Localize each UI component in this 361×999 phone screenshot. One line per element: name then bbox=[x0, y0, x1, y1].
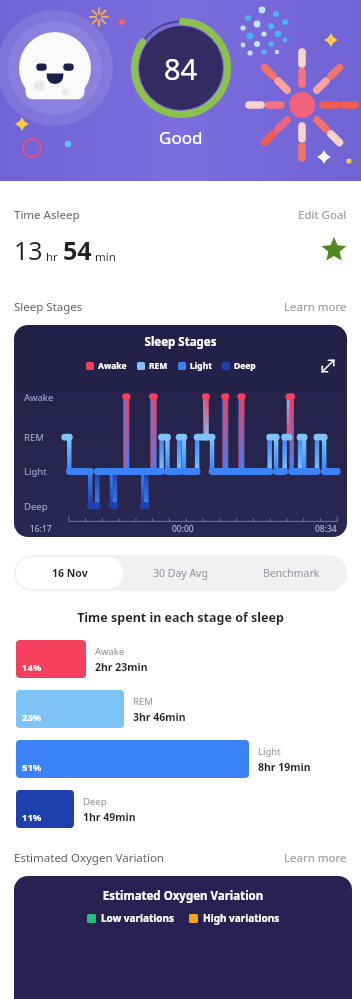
staticText: Benchmark bbox=[263, 566, 320, 580]
button[interactable]: Sleep Stages bbox=[14, 325, 347, 537]
staticText: REM bbox=[24, 431, 44, 444]
staticText: 13 bbox=[14, 233, 43, 267]
staticText: Edit Goal bbox=[298, 207, 347, 223]
button[interactable]: 14% bbox=[16, 640, 349, 678]
button[interactable]: Benchmark bbox=[236, 555, 347, 591]
staticText: Light bbox=[24, 465, 47, 478]
staticText: Awake bbox=[95, 645, 125, 658]
staticText: Time Asleep bbox=[14, 207, 80, 223]
staticText: 84 bbox=[164, 49, 198, 88]
staticText: 54 bbox=[63, 233, 92, 267]
staticText: 1hr 49min bbox=[83, 810, 136, 824]
staticText: Learn more bbox=[284, 850, 347, 866]
staticText: min bbox=[95, 249, 116, 265]
staticText: 11% bbox=[22, 811, 42, 824]
staticText: Deep bbox=[83, 795, 107, 808]
button[interactable]: 23% bbox=[16, 690, 349, 728]
staticText: Low variations bbox=[101, 911, 175, 925]
button[interactable]: Expand chart bbox=[319, 357, 337, 375]
staticText: Awake bbox=[24, 391, 54, 404]
staticText: Learn more bbox=[284, 299, 347, 315]
staticText: Estimated Oxygen Variation bbox=[14, 888, 352, 904]
staticText: 00:00 bbox=[172, 523, 194, 535]
staticText: 3hr 46min bbox=[133, 710, 186, 724]
staticText: 16:17 bbox=[30, 523, 52, 535]
staticText: REM bbox=[149, 360, 168, 372]
staticText: Deep bbox=[24, 500, 48, 513]
button[interactable]: 16 Nov bbox=[16, 557, 123, 589]
staticText: 14% bbox=[22, 661, 42, 674]
staticText: Deep bbox=[234, 360, 256, 372]
staticText: Sleep Stages bbox=[14, 299, 83, 315]
staticText: High variations bbox=[203, 911, 280, 925]
staticText: 30 Day Avg bbox=[153, 566, 208, 580]
staticText: Awake bbox=[98, 360, 127, 372]
staticText: 08:34 bbox=[315, 523, 337, 535]
staticText: 2hr 23min bbox=[95, 660, 148, 674]
staticText: Light bbox=[258, 745, 281, 758]
staticText: REM bbox=[133, 695, 153, 708]
button[interactable]: 51% bbox=[16, 740, 349, 778]
staticText: 23% bbox=[22, 711, 42, 724]
staticText: Sleep Stages bbox=[14, 334, 347, 350]
staticText: Estimated Oxygen Variation bbox=[14, 850, 164, 866]
staticText: Light bbox=[190, 360, 212, 372]
staticText: 51% bbox=[22, 761, 42, 774]
button[interactable]: Learn more bbox=[284, 850, 347, 866]
staticText: hr bbox=[46, 249, 58, 265]
button[interactable]: 30 Day Avg bbox=[125, 555, 236, 591]
button[interactable]: Estimated Oxygen Variation bbox=[14, 876, 352, 999]
staticText: 8hr 19min bbox=[258, 760, 311, 774]
button[interactable]: Learn more bbox=[284, 299, 347, 315]
staticText: 16 Nov bbox=[52, 566, 88, 580]
button[interactable]: Edit Goal bbox=[298, 207, 347, 223]
button[interactable]: 11% bbox=[16, 790, 349, 828]
other: Goal met bbox=[321, 237, 347, 263]
staticText: Time spent in each stage of sleep bbox=[0, 609, 361, 626]
staticText: Good bbox=[159, 126, 203, 149]
